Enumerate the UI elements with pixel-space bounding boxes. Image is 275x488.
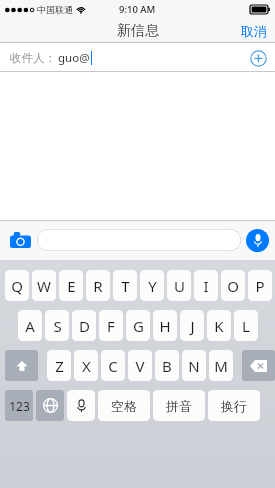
staticText: M [214, 356, 228, 376]
button[interactable]: S [45, 309, 69, 341]
button[interactable]: key [67, 389, 95, 421]
staticText: N [188, 356, 200, 376]
staticText: T [121, 276, 130, 296]
button[interactable]: B [155, 349, 179, 381]
button[interactable]: M [209, 349, 233, 381]
button[interactable]: T [113, 269, 137, 301]
button[interactable]: Voice message [246, 229, 269, 252]
button[interactable]: Y [140, 269, 164, 301]
button[interactable]: N [182, 349, 206, 381]
button[interactable]: Camera [6, 226, 34, 254]
button[interactable]: U [167, 269, 191, 301]
staticText: 中国联通 [37, 4, 73, 15]
staticText: J [190, 316, 195, 336]
staticText: 拼音 [166, 398, 192, 414]
staticText: W [37, 276, 51, 296]
button[interactable]: key [36, 389, 64, 421]
staticText: D [79, 316, 90, 336]
button[interactable]: 123 [5, 389, 33, 421]
staticText: H [159, 316, 171, 336]
staticText: I [203, 276, 209, 296]
staticText: V [135, 356, 145, 376]
button[interactable]: Z [47, 349, 71, 381]
button[interactable]: L [234, 309, 258, 341]
staticText: guo@ [58, 50, 90, 66]
staticText: Z [55, 356, 64, 376]
button[interactable]: Add contact [247, 47, 269, 69]
button[interactable]: key [242, 349, 275, 381]
staticText: Y [148, 276, 157, 296]
button[interactable]: R [86, 269, 110, 301]
staticText: L [242, 316, 250, 336]
staticText: F [107, 316, 115, 336]
button[interactable]: V [128, 349, 152, 381]
staticText: E [67, 276, 76, 296]
staticText: K [214, 316, 224, 336]
button[interactable]: D [72, 309, 96, 341]
staticText: 空格 [111, 398, 137, 414]
button[interactable]: key [5, 349, 38, 381]
button[interactable] [37, 229, 241, 251]
button[interactable]: 换行 [208, 389, 260, 421]
button[interactable]: O [221, 269, 245, 301]
button[interactable]: K [207, 309, 231, 341]
staticText: 123 [9, 398, 30, 414]
staticText: 取消 [241, 23, 267, 39]
staticText: 收件人： [10, 51, 56, 65]
button[interactable]: G [126, 309, 150, 341]
button[interactable]: W [32, 269, 56, 301]
staticText: 换行 [221, 398, 247, 414]
staticText: P [255, 276, 265, 296]
staticText: Q [11, 276, 23, 296]
staticText: O [227, 276, 239, 296]
button[interactable]: A [18, 309, 42, 341]
staticText: C [108, 356, 118, 376]
button[interactable]: J [180, 309, 204, 341]
button[interactable]: I [194, 269, 218, 301]
button[interactable]: C [101, 349, 125, 381]
staticText: R [93, 276, 103, 296]
staticText: U [174, 276, 185, 296]
staticText: 新信息 [117, 22, 159, 40]
staticText: 9:10 AM [119, 3, 156, 16]
button[interactable]: E [59, 269, 83, 301]
staticText: G [133, 316, 144, 336]
button[interactable]: 收件人： [0, 43, 275, 72]
staticText: X [82, 356, 91, 376]
staticText: A [25, 316, 35, 336]
button[interactable]: 拼音 [153, 389, 205, 421]
button[interactable]: F [99, 309, 123, 341]
staticText: B [162, 356, 172, 376]
button[interactable]: P [248, 269, 272, 301]
button[interactable]: 取消 [233, 18, 275, 43]
button[interactable]: Q [5, 269, 29, 301]
button[interactable]: H [153, 309, 177, 341]
staticText: S [53, 316, 62, 336]
button[interactable]: X [74, 349, 98, 381]
button[interactable]: 空格 [98, 389, 150, 421]
